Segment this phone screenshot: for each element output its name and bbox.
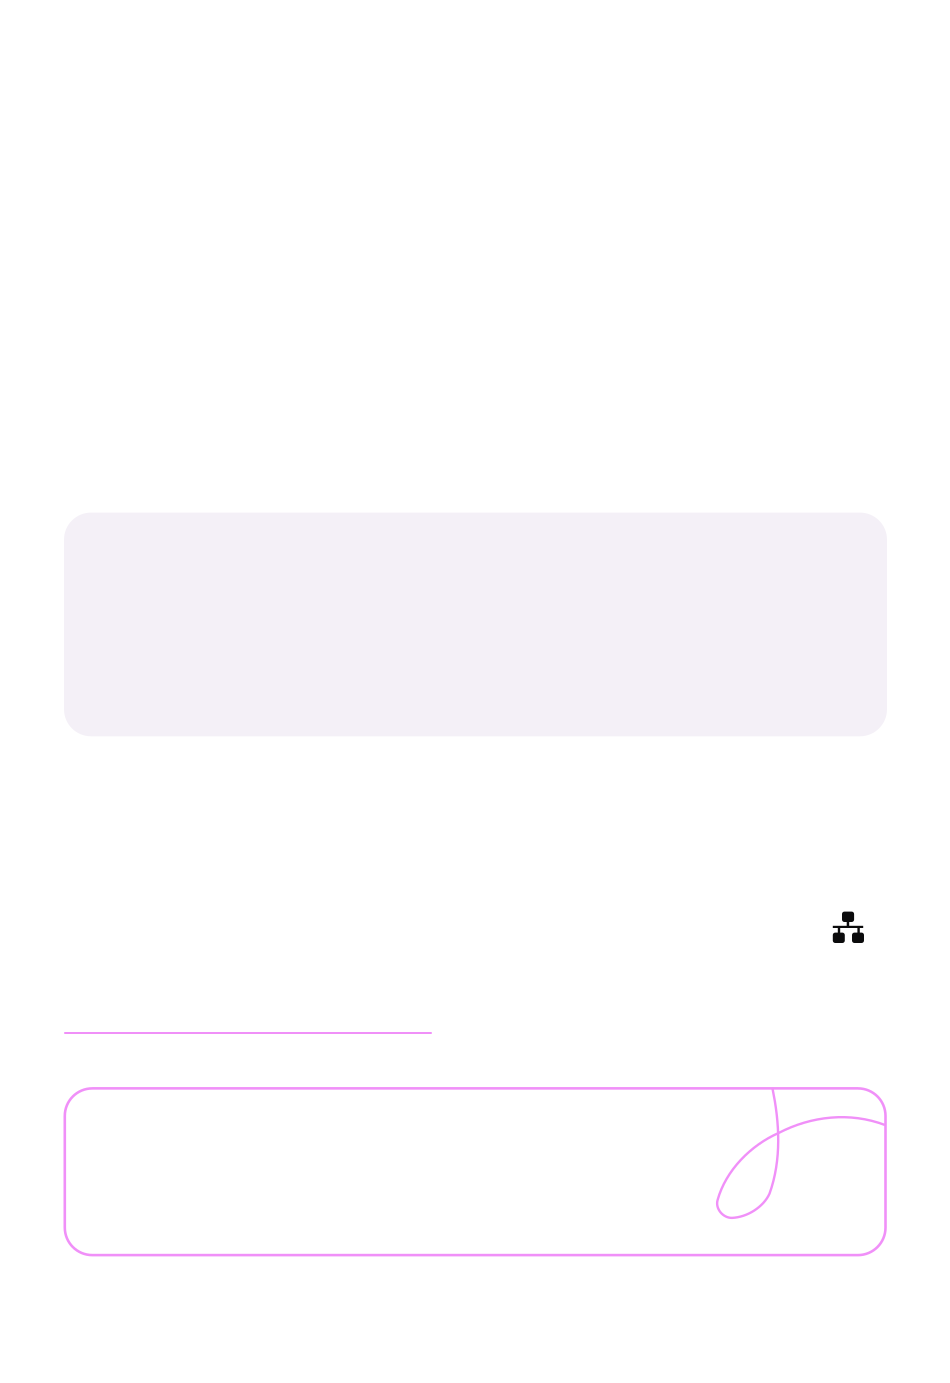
- button[interactable]: Signature: [65, 1088, 885, 1255]
- button[interactable]: Share: [826, 905, 870, 949]
